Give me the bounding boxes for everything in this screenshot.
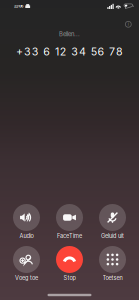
- staticText: Toetsen: [102, 275, 122, 281]
- button[interactable]: Info: [120, 16, 136, 32]
- staticText: 22:06: [14, 4, 23, 8]
- button[interactable]: Audio: [5, 204, 48, 241]
- staticText: i: [128, 22, 129, 27]
- button[interactable]: Geluid uit: [91, 204, 134, 241]
- button[interactable]: Stop: [48, 246, 91, 283]
- staticText: Bellen...: [59, 31, 80, 38]
- button[interactable]: Voeg toe: [5, 246, 48, 283]
- button[interactable]: Toetsen: [91, 246, 134, 283]
- staticText: Geluid uit: [101, 233, 124, 239]
- button[interactable]: FaceTime: [48, 204, 91, 241]
- staticText: Stop: [63, 275, 75, 281]
- staticText: +33 6 12 34 56 78: [16, 45, 123, 58]
- staticText: Voeg toe: [15, 275, 38, 281]
- staticText: FaceTime: [57, 233, 82, 239]
- staticText: Audio: [19, 233, 33, 239]
